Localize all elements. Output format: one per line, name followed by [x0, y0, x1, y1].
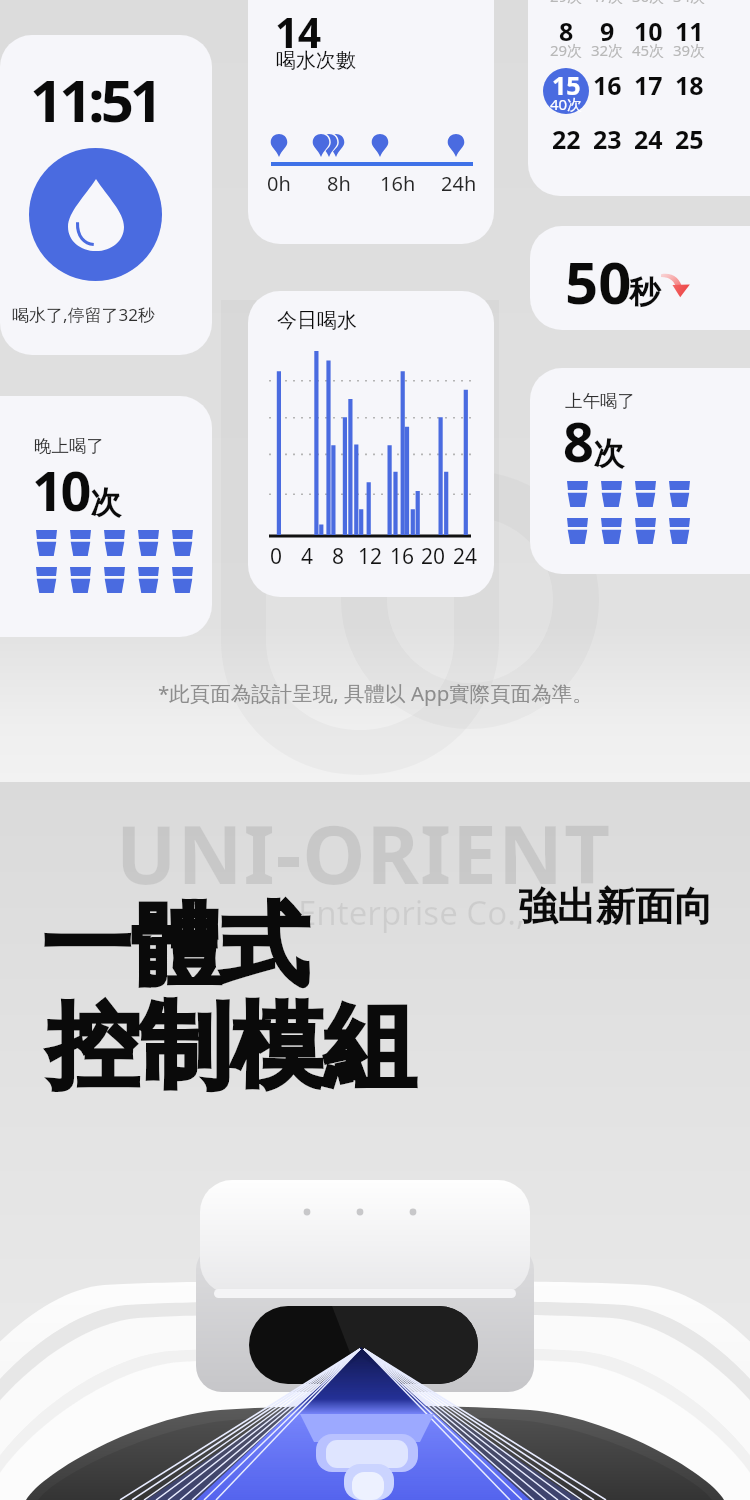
staticText: 50	[565, 242, 632, 321]
staticText: *此頁面為設計呈現, 具體以 App實際頁面為準。	[158, 679, 593, 707]
staticText: 喝水次數	[276, 48, 356, 73]
staticText: 39次	[673, 40, 706, 58]
staticText: 17	[634, 68, 663, 95]
staticText: 10	[32, 453, 89, 527]
staticText: 11:51	[30, 60, 160, 139]
staticText: 40次	[550, 94, 583, 112]
staticText: 9	[600, 14, 615, 41]
staticText: 24	[634, 122, 663, 149]
staticText: 16	[390, 542, 415, 566]
staticText: 上午喝了	[565, 390, 635, 412]
button[interactable]: 今日喝水	[248, 291, 494, 597]
staticText: 36次	[632, 0, 665, 4]
staticText: 0h	[267, 170, 291, 196]
staticText: 14	[275, 4, 321, 60]
button[interactable]: 14	[248, 0, 494, 244]
staticText: 20	[421, 542, 446, 566]
staticText: Enterprise Co.,	[298, 890, 525, 935]
staticText: 47次	[591, 0, 624, 4]
staticText: 16h	[380, 170, 416, 196]
staticText: 25	[675, 122, 704, 149]
staticText: 次	[593, 434, 624, 473]
button[interactable]: 11:51	[0, 35, 212, 355]
staticText: 8	[332, 542, 345, 566]
staticText: 12	[358, 542, 383, 566]
staticText: 喝水了,停留了32秒	[12, 303, 156, 326]
staticText: 秒	[629, 273, 660, 312]
staticText: 10	[634, 14, 663, 41]
staticText: UNI-ORIENT	[116, 798, 612, 907]
staticText: 16	[593, 68, 622, 95]
staticText: 29次	[550, 0, 583, 4]
button[interactable]: 晚上喝了	[0, 396, 212, 637]
staticText: 強出新面向	[518, 882, 713, 931]
button[interactable]: 1	[528, 0, 750, 196]
staticText: 45次	[632, 40, 665, 58]
staticText: 32次	[591, 40, 624, 58]
staticText: 34次	[673, 0, 706, 4]
staticText: 8	[563, 404, 592, 478]
staticText: 24h	[441, 170, 477, 196]
staticText: 控制模組	[47, 989, 415, 1105]
staticText: 晚上喝了	[34, 435, 104, 457]
staticText: 次	[90, 483, 121, 522]
staticText: 8h	[327, 170, 351, 196]
staticText: 23	[593, 122, 622, 149]
staticText: 18	[675, 68, 704, 95]
staticText: 今日喝水	[277, 308, 357, 333]
button[interactable]: 上午喝了	[530, 368, 750, 574]
staticText: 15	[552, 68, 581, 95]
button[interactable]: 50	[530, 226, 750, 330]
staticText: 11	[675, 14, 704, 41]
staticText: 24	[453, 542, 478, 566]
staticText: 22	[552, 122, 581, 149]
staticText: 8	[559, 14, 574, 41]
staticText: 29次	[550, 40, 583, 58]
staticText: 4	[301, 542, 314, 566]
staticText: 一體式	[42, 890, 309, 1002]
staticText: 0	[270, 542, 283, 566]
